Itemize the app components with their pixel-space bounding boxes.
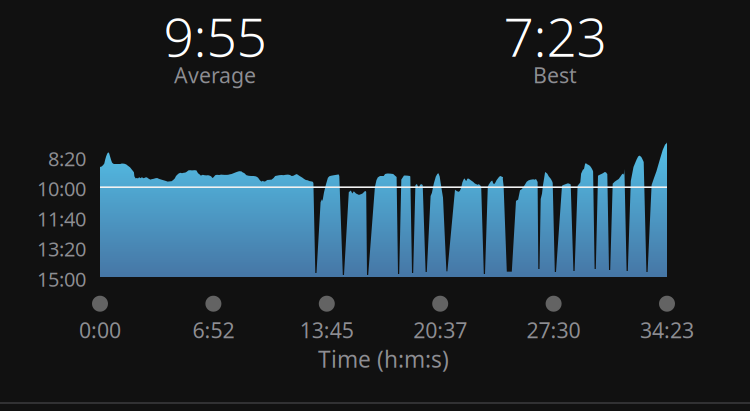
staticText: 13:20 [37, 236, 86, 262]
staticText: 15:00 [37, 266, 86, 292]
staticText: 20:37 [413, 316, 467, 344]
staticText: 0:00 [79, 316, 121, 344]
staticText: Time (h:m:s) [318, 344, 449, 374]
staticText: 13:45 [300, 316, 354, 344]
staticText: 27:30 [527, 316, 581, 344]
staticText: 7:23 [503, 1, 606, 71]
staticText: Average [174, 61, 256, 89]
staticText: 8:20 [48, 145, 86, 172]
staticText: 6:52 [192, 316, 234, 344]
staticText: 9:55 [163, 1, 266, 71]
staticText: Best [533, 61, 577, 89]
staticText: 11:40 [37, 205, 86, 232]
staticText: 10:00 [37, 175, 86, 202]
staticText: 34:23 [640, 316, 694, 344]
